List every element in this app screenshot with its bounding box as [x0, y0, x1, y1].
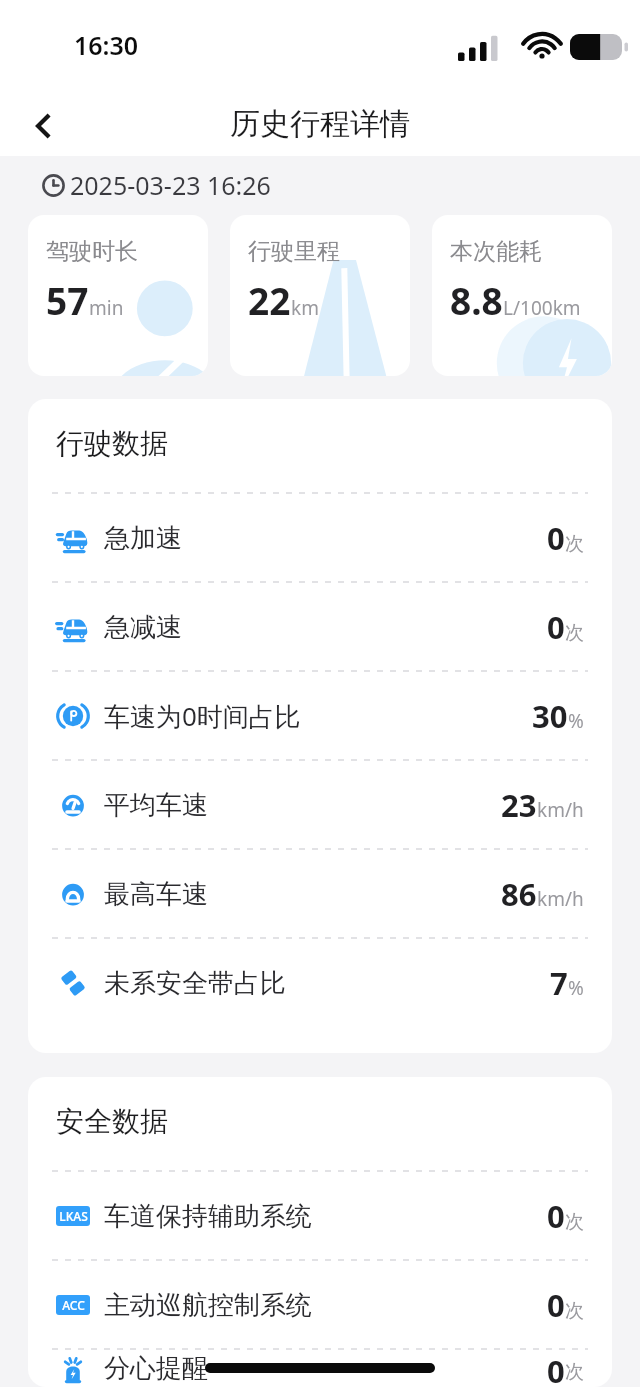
staticText: 16:30	[74, 28, 139, 62]
staticText: km	[291, 295, 319, 321]
staticText: 次	[565, 1299, 584, 1323]
staticText: L/100km	[503, 295, 581, 321]
button[interactable]: 平均车速	[28, 761, 612, 849]
staticText: 86	[501, 873, 537, 915]
staticText: 次	[565, 1360, 584, 1384]
staticText: 主动巡航控制系统	[104, 1289, 312, 1322]
staticText: 最高车速	[104, 878, 208, 911]
staticText: %	[568, 975, 584, 1001]
staticText: 驾驶时长	[46, 237, 138, 266]
staticText: 8.8	[450, 275, 503, 325]
staticText: 历史行程详情	[230, 105, 410, 143]
staticText: 车速为0时间占比	[104, 698, 301, 734]
staticText: %	[568, 708, 584, 734]
button[interactable]: LKAS	[28, 1172, 612, 1260]
button[interactable]: 未系安全带占比	[28, 939, 612, 1027]
staticText: 7	[550, 962, 568, 1004]
staticText: 2025-03-23 16:26	[70, 168, 271, 202]
staticText: km/h	[537, 886, 584, 912]
staticText: 0	[547, 1195, 565, 1237]
staticText: 次	[565, 621, 584, 645]
staticText: 安全数据	[56, 1104, 168, 1139]
staticText: min	[89, 295, 124, 321]
staticText: 行驶数据	[56, 426, 168, 461]
button[interactable]: 急减速	[28, 583, 612, 671]
button[interactable]: 分心提醒	[28, 1350, 612, 1387]
button[interactable]: 驾驶时长	[28, 215, 208, 376]
staticText: 未系安全带占比	[104, 967, 286, 1000]
staticText: 分心提醒	[104, 1352, 208, 1385]
button[interactable]: 最高车速	[28, 850, 612, 938]
staticText: 平均车速	[104, 789, 208, 822]
staticText: 57	[46, 275, 89, 325]
staticText: 23	[501, 784, 537, 826]
button[interactable]: 急加速	[28, 494, 612, 582]
staticText: 0	[547, 606, 565, 648]
staticText: 次	[565, 1210, 584, 1234]
staticText: km/h	[537, 797, 584, 823]
staticText: 0	[547, 517, 565, 559]
staticText: 行驶里程	[248, 237, 340, 266]
staticText: 急减速	[104, 611, 182, 644]
staticText: 0	[547, 1350, 565, 1387]
staticText: LKAS	[59, 1208, 88, 1224]
button[interactable]: 车速为0时间占比	[28, 672, 612, 760]
staticText: 次	[565, 532, 584, 556]
staticText: 22	[248, 275, 291, 325]
button[interactable]: Back	[14, 96, 74, 156]
staticText: 车道保持辅助系统	[104, 1200, 312, 1233]
staticText: 本次能耗	[450, 237, 542, 266]
button[interactable]: 本次能耗	[432, 215, 612, 376]
staticText: ACC	[62, 1297, 85, 1313]
staticText: 0	[547, 1284, 565, 1326]
staticText: 30	[532, 695, 568, 737]
staticText: 急加速	[104, 522, 182, 555]
button[interactable]: ACC	[28, 1261, 612, 1349]
button[interactable]: 行驶里程	[230, 215, 410, 376]
